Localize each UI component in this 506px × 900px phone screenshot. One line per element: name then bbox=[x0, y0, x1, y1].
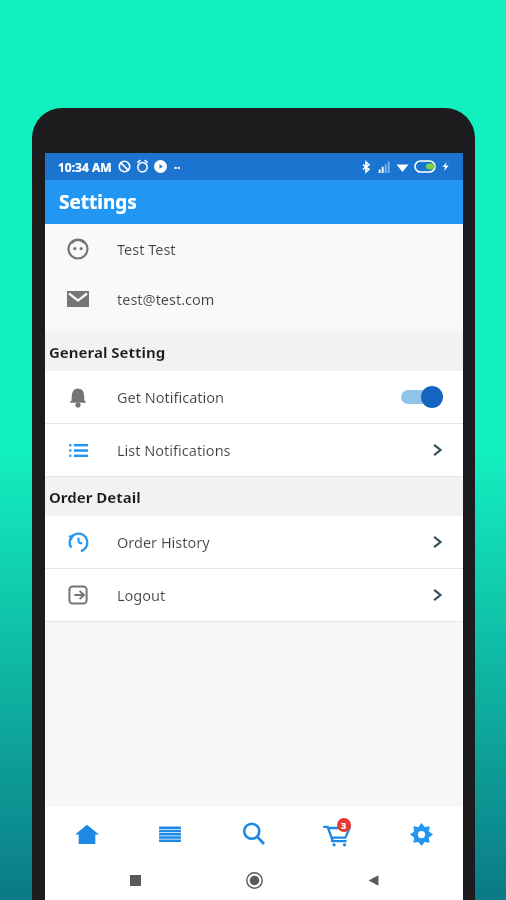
staticText: test@test.com bbox=[117, 289, 215, 309]
button[interactable]: test@test.com bbox=[45, 274, 463, 324]
staticText: Order History bbox=[117, 532, 210, 552]
button[interactable]: Test Test bbox=[45, 224, 463, 274]
button[interactable]: Settings bbox=[379, 807, 463, 860]
button[interactable]: Logout bbox=[45, 569, 463, 622]
button[interactable]: Home bbox=[45, 807, 128, 860]
staticText: ·· bbox=[174, 159, 181, 175]
staticText: Logout bbox=[117, 585, 166, 605]
button[interactable] bbox=[397, 386, 445, 408]
staticText: 10:34 AM bbox=[58, 159, 112, 175]
button[interactable]: Get Notification bbox=[45, 371, 463, 424]
button[interactable]: Cart bbox=[295, 807, 379, 860]
staticText: Settings bbox=[59, 189, 137, 215]
button[interactable]: Recents bbox=[75, 860, 195, 900]
button[interactable]: List Notifications bbox=[45, 424, 463, 477]
button[interactable]: Menu bbox=[128, 807, 211, 860]
staticText: Order Detail bbox=[49, 487, 141, 507]
button[interactable]: Order History bbox=[45, 516, 463, 569]
staticText: General Setting bbox=[49, 342, 166, 362]
staticText: List Notifications bbox=[117, 440, 231, 460]
button[interactable]: Back bbox=[314, 860, 433, 900]
button[interactable]: Search bbox=[211, 807, 295, 860]
staticText: Get Notification bbox=[117, 387, 225, 407]
staticText: 3 bbox=[341, 819, 347, 831]
staticText: Test Test bbox=[117, 239, 176, 259]
button[interactable]: Home bbox=[195, 860, 314, 900]
